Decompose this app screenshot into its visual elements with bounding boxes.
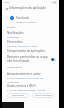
button[interactable]: Permissões <box>2 40 59 47</box>
button[interactable]: Remover permissões se a app <box>2 55 59 63</box>
button[interactable]: Notificações <box>2 31 59 38</box>
staticText: 62 MB utilizados em Armaz. int. <box>7 76 44 79</box>
button[interactable]: Back <box>4 6 9 11</box>
staticText: Permitidas <box>7 35 20 38</box>
staticText: Desinstalar <box>12 94 25 97</box>
staticText: versão 412.0.0.29.70 <box>16 21 37 24</box>
staticText: Câmara, Contactos e mais <box>7 44 38 47</box>
staticText: Dados móveis e Wi-Fi <box>7 84 36 88</box>
staticText: Forçar paragem <box>35 94 53 97</box>
button[interactable]: Desinstalar <box>7 93 29 98</box>
button[interactable]: Armazenamento e cache <box>2 72 59 79</box>
staticText: Facebook <box>16 16 29 20</box>
staticText: Avançadas <box>7 80 20 83</box>
button[interactable]: Forçar paragem <box>32 93 55 98</box>
staticText: Temporizador de aplicações <box>7 49 45 53</box>
staticText: Informações da aplicação <box>9 6 47 10</box>
button[interactable]: Dados móveis e Wi-Fi <box>2 84 59 91</box>
button[interactable]: Temporizador de aplicações <box>2 49 59 53</box>
staticText: não for utilizada <box>7 59 30 63</box>
staticText: Predefinições <box>7 65 23 68</box>
staticText: Remover permissões se a app <box>7 55 48 59</box>
staticText: Notificações <box>7 31 24 35</box>
staticText: Permissões <box>7 40 23 44</box>
staticText: Privada <box>7 25 16 28</box>
staticText: 10:24 <box>4 1 10 4</box>
staticText: Armazenamento e cache <box>7 72 41 76</box>
staticText: ○ ▲ ▮ <box>51 1 57 4</box>
staticText: 1,24 GB utilizados desde 1 de jan. <box>7 88 47 91</box>
